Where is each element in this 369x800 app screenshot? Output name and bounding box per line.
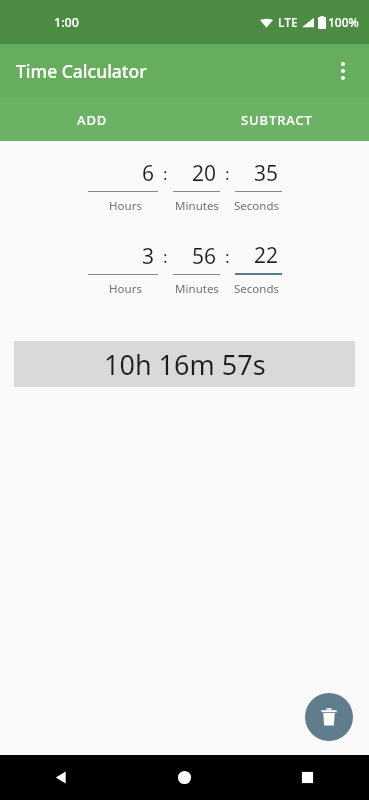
staticText: : — [225, 162, 230, 185]
staticText: 100% — [328, 14, 359, 30]
staticText: Minutes — [175, 281, 219, 297]
button[interactable]: Home — [123, 755, 246, 800]
staticText: 35 — [254, 159, 279, 188]
staticText: ADD — [77, 111, 108, 129]
staticText: 56 — [192, 242, 217, 271]
button[interactable]: ADD — [0, 98, 184, 141]
button[interactable]: SUBTRACT — [184, 98, 369, 141]
button[interactable]: More options — [323, 51, 363, 91]
staticText: 10h 16m 57s — [104, 346, 266, 383]
button[interactable]: 10h 16m 57s — [14, 341, 355, 387]
button[interactable]: Recent apps — [246, 755, 369, 800]
button[interactable]: 35 — [235, 159, 282, 192]
staticText: : — [225, 245, 230, 268]
staticText: : — [163, 245, 168, 268]
staticText: : — [163, 162, 168, 185]
button[interactable]: 22 — [235, 241, 282, 275]
staticText: Minutes — [175, 198, 219, 214]
staticText: 6 — [142, 159, 155, 188]
button[interactable]: Back — [0, 755, 123, 800]
button[interactable]: 3 — [88, 242, 158, 275]
staticText: Time Calculator — [16, 59, 147, 83]
button[interactable]: 6 — [88, 159, 158, 192]
staticText: 20 — [192, 159, 217, 188]
staticText: Seconds — [234, 198, 279, 214]
staticText: LTE — [278, 14, 298, 30]
staticText: Hours — [109, 198, 142, 214]
button[interactable]: 56 — [173, 242, 220, 275]
button[interactable]: 20 — [173, 159, 220, 192]
staticText: 1:00 — [54, 14, 79, 31]
staticText: Hours — [109, 281, 142, 297]
staticText: SUBTRACT — [241, 111, 313, 129]
staticText: 3 — [142, 242, 155, 271]
button[interactable]: Clear — [305, 693, 353, 741]
staticText: 22 — [254, 241, 279, 270]
staticText: Seconds — [234, 281, 279, 297]
